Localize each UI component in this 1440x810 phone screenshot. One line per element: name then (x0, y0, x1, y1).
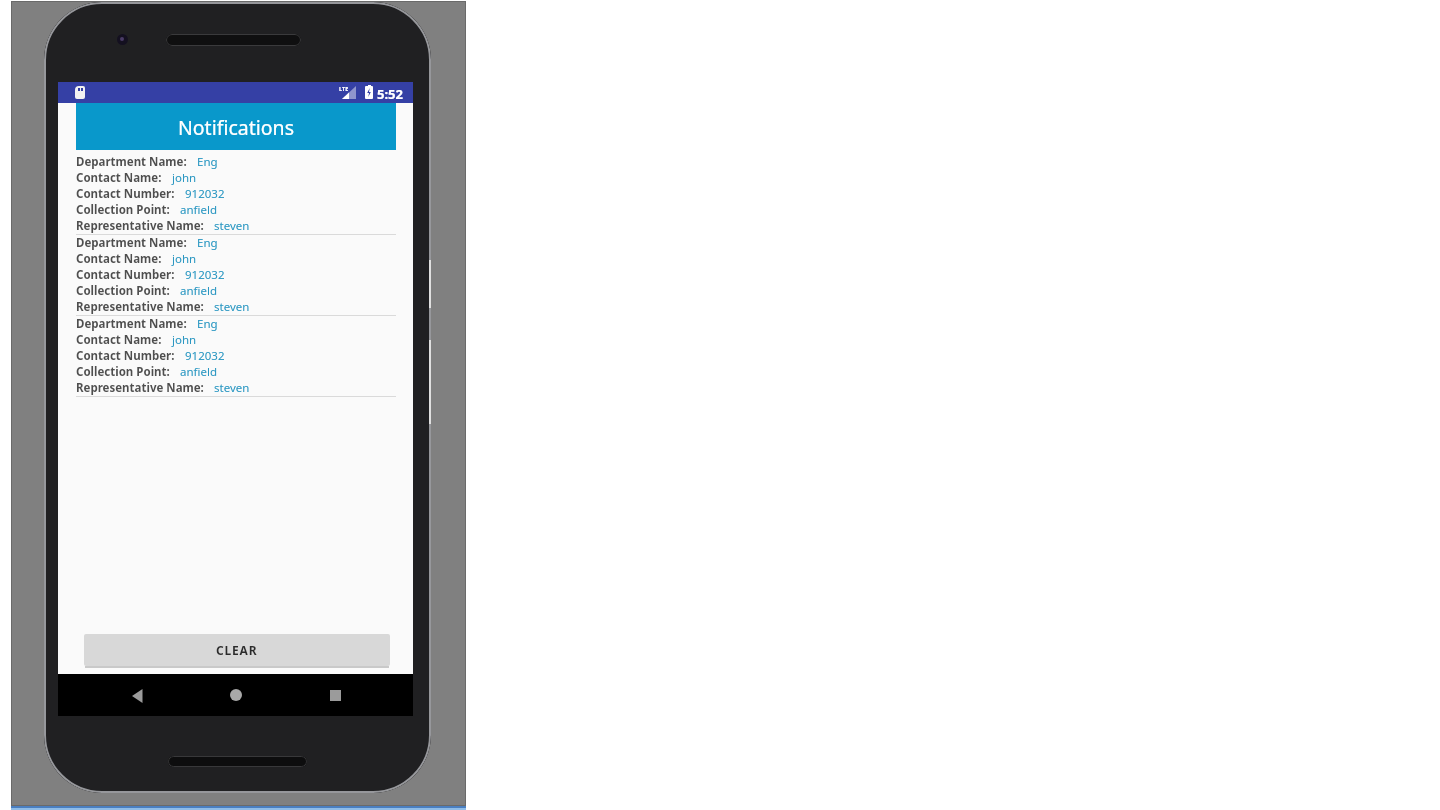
staticText: Department Name: (76, 154, 187, 170)
staticText: steven (214, 299, 250, 315)
staticText: anfield (180, 364, 218, 380)
staticText: CLEAR (216, 642, 258, 658)
staticText: Department Name: (76, 316, 187, 332)
button[interactable]: Department Name: (76, 316, 396, 397)
staticText: Collection Point: (76, 202, 170, 218)
staticText: Contact Name: (76, 332, 162, 348)
staticText: steven (214, 218, 250, 234)
staticText: Collection Point: (76, 283, 170, 299)
staticText: Contact Name: (76, 251, 162, 267)
staticText: Representative Name: (76, 299, 204, 315)
staticText: 912032 (185, 186, 225, 202)
staticText: LTE (339, 85, 349, 92)
staticText: Collection Point: (76, 364, 170, 380)
button[interactable]: CLEAR (84, 634, 390, 666)
staticText: anfield (180, 202, 218, 218)
button[interactable]: Department Name: (76, 235, 396, 316)
staticText: 5:52 (377, 85, 403, 103)
staticText: Eng (197, 154, 218, 170)
staticText: 912032 (185, 267, 225, 283)
staticText: Contact Number: (76, 348, 175, 364)
button[interactable] (230, 689, 242, 701)
staticText: 912032 (185, 348, 225, 364)
staticText: john (172, 170, 197, 186)
staticText: anfield (180, 283, 218, 299)
staticText: Representative Name: (76, 380, 204, 396)
staticText: john (172, 332, 197, 348)
staticText: Notifications (178, 114, 294, 141)
staticText: Eng (197, 235, 218, 251)
staticText: Department Name: (76, 235, 187, 251)
staticText: Contact Name: (76, 170, 162, 186)
staticText: Eng (197, 316, 218, 332)
staticText: Contact Number: (76, 267, 175, 283)
staticText: Representative Name: (76, 218, 204, 234)
button[interactable]: Department Name: (76, 154, 396, 235)
staticText: steven (214, 380, 250, 396)
button[interactable] (129, 689, 144, 703)
staticText: Contact Number: (76, 186, 175, 202)
staticText: john (172, 251, 197, 267)
